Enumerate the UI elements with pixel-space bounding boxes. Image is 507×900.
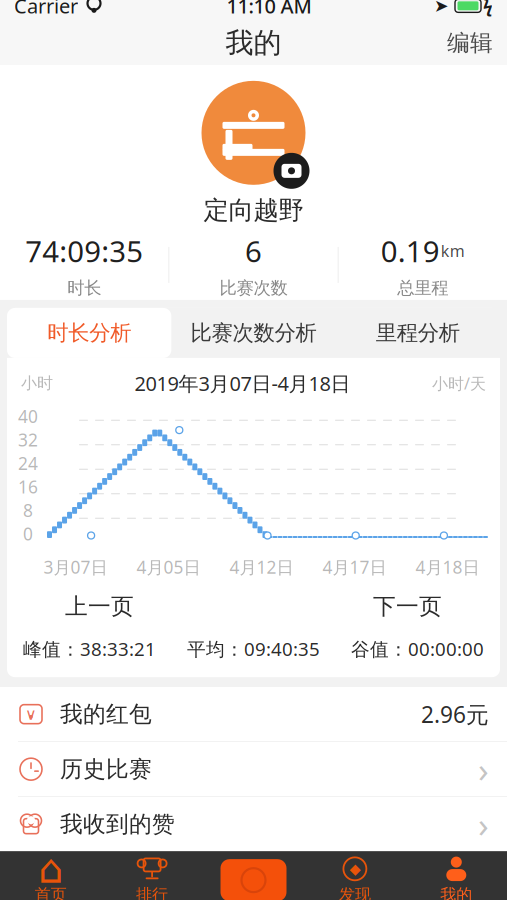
staticText: 排行: [136, 885, 168, 900]
staticText: 历史比赛: [60, 755, 152, 783]
staticText: ∨: [25, 705, 37, 723]
staticText: 我收到的赞: [60, 810, 175, 838]
staticText: 4月18日: [415, 555, 479, 578]
staticText: 上一页: [65, 592, 134, 620]
staticText: Carrier: [14, 0, 78, 19]
staticText: 首页: [35, 885, 67, 900]
staticText: 0: [23, 522, 33, 545]
button[interactable]: 我收到的赞: [0, 797, 507, 851]
staticText: 发现: [339, 885, 371, 900]
staticText: 定向越野: [203, 195, 303, 226]
staticText: 小时: [21, 373, 53, 393]
staticText: 4月12日: [229, 555, 293, 578]
staticText: 11:10 AM: [226, 0, 311, 19]
button[interactable]: 里程分析: [336, 308, 500, 358]
staticText: 下一页: [373, 592, 442, 620]
staticText: 32: [18, 428, 38, 451]
staticText: 总里程: [397, 277, 448, 299]
staticText: 6: [245, 231, 262, 270]
button[interactable]: 历史比赛: [0, 742, 507, 797]
staticText: 时长分析: [47, 320, 131, 346]
staticText: 编辑: [447, 29, 493, 57]
staticText: 比赛次数: [219, 277, 287, 299]
staticText: 74:09:35: [25, 231, 143, 270]
staticText: km: [441, 240, 465, 261]
staticText: ϟ: [483, 0, 493, 17]
staticText: 40: [18, 405, 38, 428]
staticText: 24: [18, 452, 38, 475]
button[interactable]: 录制: [203, 851, 304, 900]
staticText: ›: [478, 746, 489, 792]
staticText: 比赛次数分析: [190, 320, 316, 346]
staticText: 16: [18, 475, 38, 498]
button[interactable]: 编辑: [433, 21, 507, 65]
staticText: 峰值：38:33:21: [23, 636, 156, 661]
staticText: 4月05日: [136, 555, 200, 578]
button[interactable]: 比赛次数分析: [171, 308, 336, 358]
button[interactable]: ∨: [0, 687, 507, 742]
button[interactable]: 下一页: [357, 586, 458, 626]
staticText: 0.19: [381, 231, 440, 270]
staticText: 4月17日: [322, 555, 386, 578]
staticText: 8: [23, 499, 33, 522]
staticText: ➤: [434, 0, 449, 16]
staticText: 3月07日: [43, 555, 107, 578]
staticText: 我的红包: [60, 700, 152, 728]
staticText: ◆: [349, 860, 360, 877]
button[interactable]: ◆: [304, 851, 406, 900]
staticText: 小时/天: [432, 373, 486, 394]
staticText: 我的: [225, 26, 281, 60]
staticText: 时长: [67, 277, 101, 299]
button[interactable]: ⌂: [0, 851, 101, 900]
staticText: 里程分析: [376, 320, 460, 346]
staticText: 2.96元: [421, 699, 489, 729]
staticText: 谷值：00:00:00: [351, 636, 484, 661]
button[interactable]: 我的: [406, 851, 507, 900]
staticText: 平均：09:40:35: [187, 636, 320, 661]
button[interactable]: 排行: [101, 851, 203, 900]
staticText: 我的: [440, 885, 472, 900]
button[interactable]: 上一页: [49, 586, 150, 626]
staticText: ⌂: [38, 846, 63, 891]
staticText: ›: [478, 801, 489, 847]
button[interactable]: 时长分析: [7, 308, 171, 358]
staticText: 2019年3月07日-4月18日: [134, 370, 350, 397]
